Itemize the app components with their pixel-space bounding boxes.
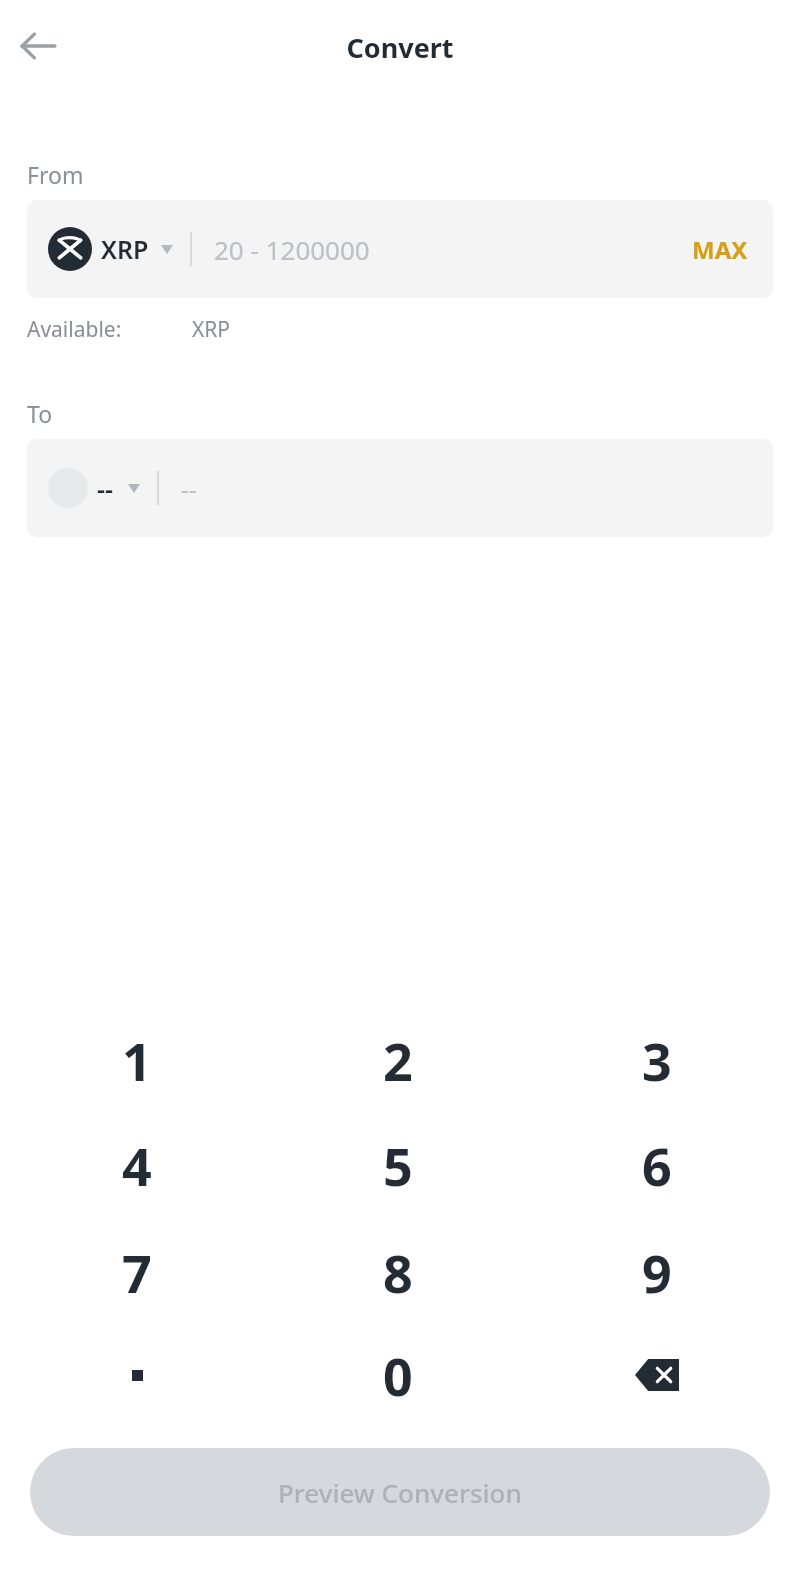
staticText: 6 bbox=[642, 1130, 672, 1201]
staticText: To bbox=[27, 398, 53, 429]
button[interactable]: -- bbox=[27, 439, 773, 537]
button[interactable]: Preview Conversion bbox=[30, 1448, 770, 1536]
staticText: XRP bbox=[101, 232, 149, 266]
button[interactable]: 3 bbox=[592, 1008, 722, 1112]
button[interactable]: 8 bbox=[333, 1220, 463, 1324]
staticText: 0 bbox=[383, 1340, 413, 1411]
staticText: Convert bbox=[0, 29, 800, 66]
button[interactable]: 0 bbox=[333, 1323, 463, 1427]
staticText: XRP bbox=[192, 315, 231, 344]
button[interactable]: 2 bbox=[333, 1008, 463, 1112]
button[interactable]: Decimal point bbox=[72, 1323, 202, 1427]
staticText: 1 bbox=[122, 1025, 152, 1096]
staticText: 9 bbox=[642, 1237, 672, 1308]
staticText: 4 bbox=[122, 1130, 152, 1201]
staticText: 5 bbox=[383, 1130, 413, 1201]
button[interactable]: Back bbox=[14, 22, 62, 70]
staticText: 8 bbox=[383, 1237, 413, 1308]
button[interactable]: 1 bbox=[72, 1008, 202, 1112]
staticText: From bbox=[27, 159, 84, 190]
button[interactable]: 9 bbox=[592, 1220, 722, 1324]
button[interactable]: Backspace bbox=[592, 1323, 722, 1427]
staticText: 2 bbox=[383, 1025, 413, 1096]
staticText: -- bbox=[181, 472, 197, 505]
button[interactable]: 6 bbox=[592, 1113, 722, 1217]
staticText: Available: bbox=[27, 315, 122, 344]
button[interactable]: XRP bbox=[27, 200, 773, 298]
button[interactable]: 7 bbox=[72, 1220, 202, 1324]
button[interactable]: MAX bbox=[682, 223, 758, 276]
button[interactable]: 4 bbox=[72, 1113, 202, 1217]
staticText: 20 - 1200000 bbox=[214, 232, 370, 267]
staticText: Preview Conversion bbox=[278, 1475, 522, 1510]
staticText: -- bbox=[97, 471, 114, 505]
staticText: 7 bbox=[122, 1237, 152, 1308]
staticText: 3 bbox=[642, 1025, 672, 1096]
staticText: MAX bbox=[692, 233, 748, 266]
button[interactable]: 5 bbox=[333, 1113, 463, 1217]
